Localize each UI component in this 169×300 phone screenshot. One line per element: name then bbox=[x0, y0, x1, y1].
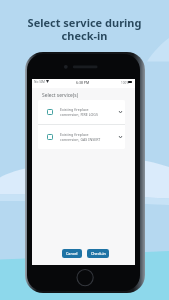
staticText: conversion, GAS INSERT bbox=[60, 137, 101, 142]
staticText: Existing fireplace bbox=[60, 107, 89, 112]
staticText: Cancel bbox=[66, 251, 78, 256]
staticText: Select service during check-in bbox=[0, 15, 169, 43]
staticText: 6:38 PM bbox=[76, 80, 90, 85]
button[interactable]: Expand service options bbox=[115, 125, 125, 149]
button[interactable]: Expand service options bbox=[115, 100, 125, 124]
button[interactable]: Existing fireplace bbox=[38, 100, 125, 124]
button[interactable]: Cancel bbox=[62, 249, 82, 258]
staticText: Existing fireplace bbox=[60, 132, 89, 137]
button[interactable]: Check-in bbox=[87, 249, 109, 258]
staticText: Check-in bbox=[91, 251, 106, 256]
staticText: No SIM bbox=[34, 80, 45, 84]
button[interactable]: Existing fireplace bbox=[38, 125, 125, 149]
staticText: 100% bbox=[121, 81, 129, 85]
staticText: Select service(s) bbox=[42, 92, 79, 99]
staticText: conversion, FIRE LOGS bbox=[60, 112, 98, 117]
